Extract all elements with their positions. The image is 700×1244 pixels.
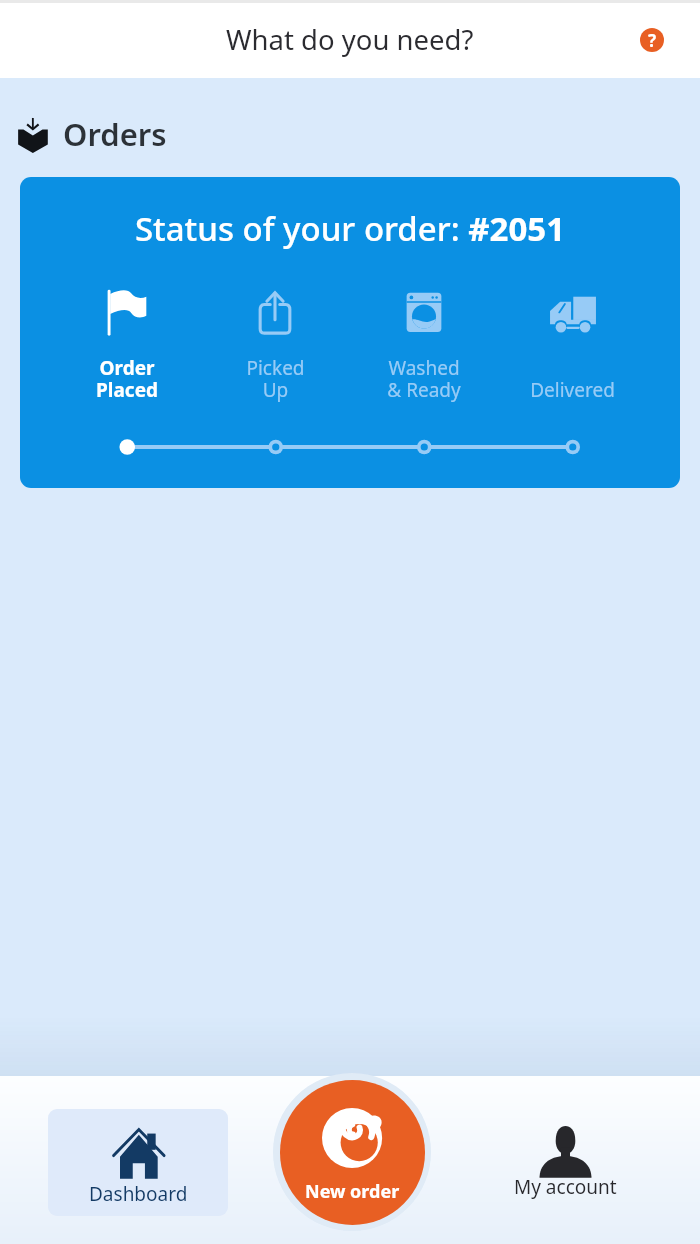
button[interactable]: Delivered — [498, 283, 647, 403]
button[interactable]: Picked Up — [201, 283, 349, 403]
button[interactable]: My account — [510, 1116, 621, 1200]
staticText: Orders — [63, 113, 167, 155]
staticText: Dashboard — [89, 1181, 188, 1207]
staticText: My account — [514, 1174, 617, 1200]
staticText: What do you need? — [226, 21, 474, 58]
button[interactable]: Dashboard — [48, 1109, 228, 1216]
button[interactable]: Order Placed — [53, 283, 201, 403]
staticText: Status of your order: #2051 — [20, 206, 680, 251]
staticText: Picked Up — [246, 355, 305, 403]
staticText: Delivered — [530, 355, 615, 403]
staticText: ? — [648, 29, 657, 52]
button[interactable]: Help — [637, 25, 667, 55]
button[interactable]: Washed & Ready — [349, 283, 498, 403]
button[interactable]: New order — [280, 1080, 425, 1225]
staticText: Order Placed — [96, 355, 158, 403]
staticText: New order — [305, 1179, 400, 1204]
staticText: Washed & Ready — [387, 355, 461, 403]
